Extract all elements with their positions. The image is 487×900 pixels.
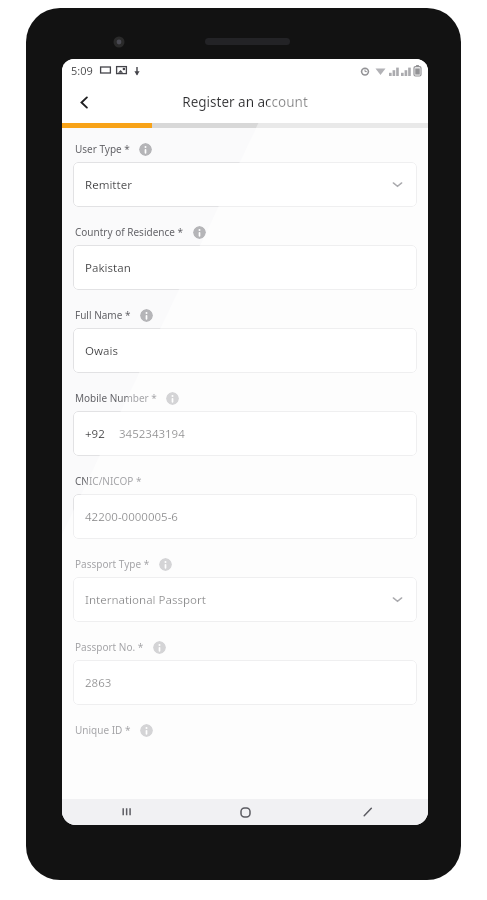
staticText: 2863 — [85, 675, 112, 691]
staticText: Unique ID * — [75, 723, 131, 737]
staticText: User Type * — [75, 142, 130, 156]
staticText: +92 — [85, 426, 105, 442]
staticText: Register an account — [182, 93, 308, 111]
button[interactable]: 2863 — [73, 660, 417, 705]
staticText: 5:09 — [71, 63, 93, 78]
button[interactable]: Info — [140, 724, 153, 737]
button[interactable]: Info — [139, 143, 152, 156]
staticText: Remitter — [85, 177, 132, 193]
button[interactable]: Info — [140, 309, 153, 322]
button[interactable]: Recent apps — [114, 799, 140, 825]
staticText: Passport No. * — [75, 640, 144, 654]
button[interactable]: Back — [66, 84, 102, 120]
staticText: 42200-0000005-6 — [85, 509, 178, 525]
staticText: Passport Type * — [75, 557, 150, 571]
button[interactable]: Pakistan — [73, 245, 417, 290]
button[interactable]: Info — [193, 226, 206, 239]
staticText: International Passport — [85, 592, 206, 608]
button[interactable]: Info — [166, 392, 179, 405]
staticText: 3452343194 — [119, 426, 185, 442]
staticText: CNIC/NICOP * — [75, 474, 142, 488]
button[interactable]: Info — [153, 641, 166, 654]
staticText: Owais — [85, 343, 118, 359]
button[interactable]: 42200-0000005-6 — [73, 494, 417, 539]
button[interactable]: +92 — [73, 411, 417, 456]
button[interactable]: Info — [159, 558, 172, 571]
staticText: Mobile Number * — [75, 391, 157, 405]
staticText: Full Name * — [75, 308, 131, 322]
button[interactable]: Home — [232, 799, 258, 825]
button[interactable]: Back — [354, 799, 380, 825]
button[interactable]: Remitter — [73, 162, 417, 207]
button[interactable]: Owais — [73, 328, 417, 373]
button[interactable]: International Passport — [73, 577, 417, 622]
staticText: Country of Residence * — [75, 225, 184, 239]
staticText: Pakistan — [85, 260, 131, 276]
